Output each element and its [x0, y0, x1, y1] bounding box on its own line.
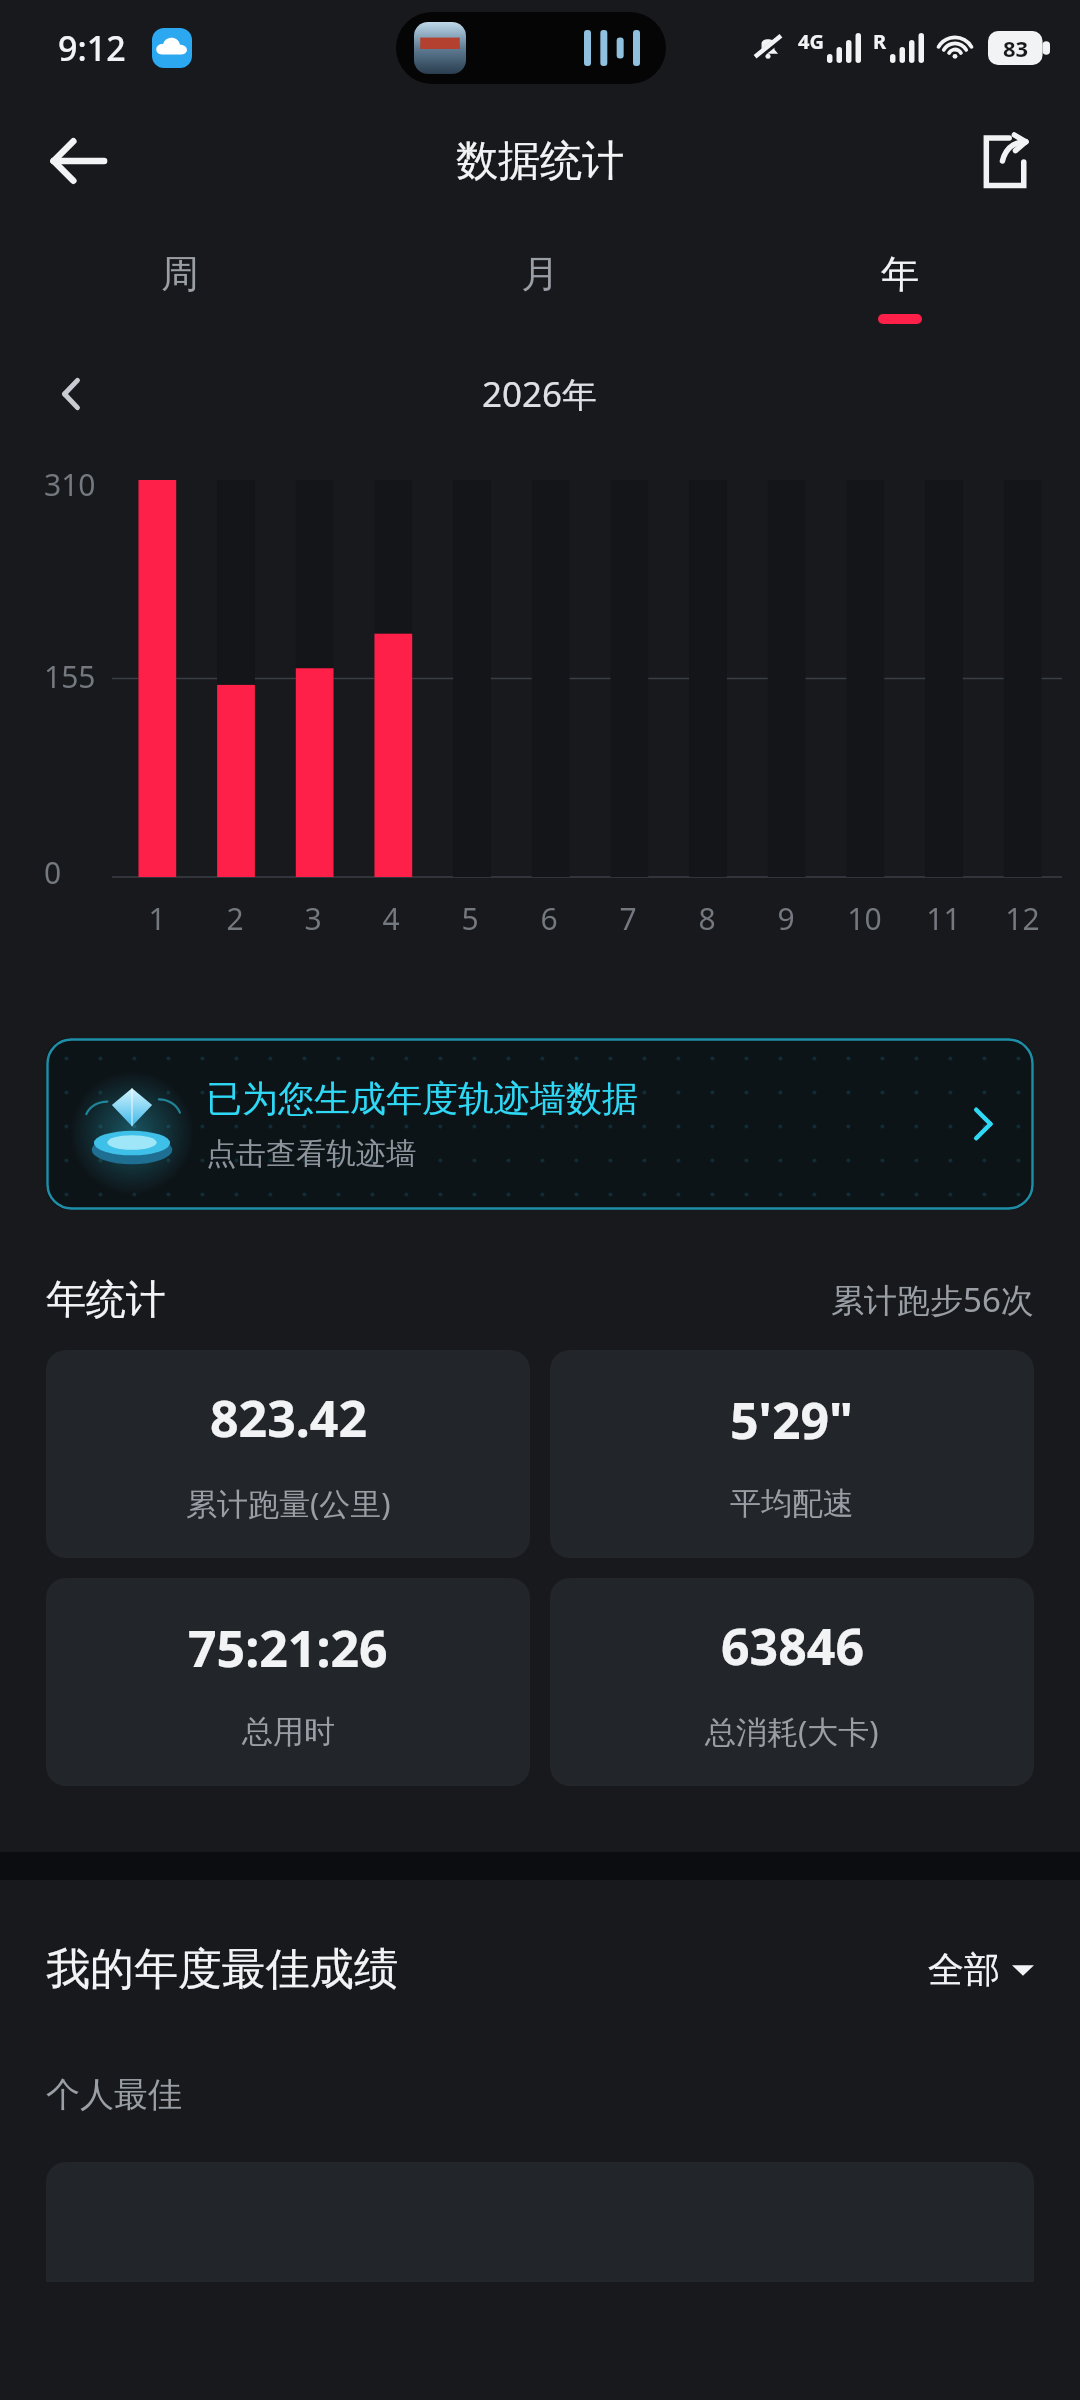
staticText: 2	[226, 898, 244, 939]
staticText: 3	[304, 898, 322, 939]
button[interactable]: 823.42	[46, 1350, 530, 1558]
staticText: 12	[1005, 898, 1040, 939]
button[interactable]: Back	[30, 113, 126, 209]
button[interactable]: 全部	[928, 1947, 1034, 1992]
staticText: 点击查看轨迹墙	[206, 1135, 416, 1173]
staticText: 0	[44, 852, 62, 893]
staticText: 5'29"	[730, 1386, 854, 1454]
staticText: 全部	[928, 1947, 1000, 1992]
button[interactable]: 75:21:26	[46, 1578, 530, 1786]
staticText: 周	[161, 250, 199, 298]
button[interactable]: 5'29"	[550, 1350, 1034, 1558]
staticText: 6	[540, 898, 558, 939]
button[interactable]: 周	[0, 226, 360, 348]
staticText: 155	[44, 656, 96, 697]
staticText: 83	[1003, 33, 1029, 63]
staticText: 2026年	[482, 370, 598, 418]
button[interactable]: 月	[360, 226, 720, 348]
staticText: 数据统计	[456, 135, 624, 188]
button[interactable]: Share	[958, 115, 1050, 207]
staticText: 4	[382, 898, 400, 939]
staticText: 总消耗(大卡)	[705, 1710, 879, 1752]
staticText: 10	[847, 898, 882, 939]
button[interactable]: Previous year	[36, 358, 108, 430]
staticText: 11	[926, 898, 961, 939]
button[interactable]: 63846	[550, 1578, 1034, 1786]
staticText: 累计跑步56次	[831, 1277, 1034, 1322]
staticText: 63846	[721, 1612, 864, 1680]
staticText: 1	[148, 898, 166, 939]
staticText: 823.42	[210, 1384, 368, 1452]
staticText: 9	[777, 898, 795, 939]
staticText: 年统计	[46, 1274, 166, 1324]
staticText: 个人最佳	[46, 2073, 182, 2116]
staticText: 总用时	[242, 1712, 335, 1751]
button[interactable]: 年	[720, 226, 1080, 348]
staticText: 5	[461, 898, 479, 939]
staticText: 平均配速	[730, 1484, 854, 1523]
staticText: 年	[881, 250, 919, 298]
staticText: 月	[521, 250, 559, 298]
staticText: 已为您生成年度轨迹墙数据	[206, 1076, 638, 1121]
staticText: 7	[619, 898, 637, 939]
staticText: 4G	[798, 28, 824, 55]
staticText: 75:21:26	[188, 1614, 388, 1682]
staticText: 我的年度最佳成绩	[46, 1942, 398, 1997]
staticText: 9:12	[58, 25, 126, 71]
staticText: 310	[44, 464, 96, 505]
button[interactable]: 已为您生成年度轨迹墙数据	[46, 1038, 1034, 1210]
staticText: R	[873, 28, 887, 55]
staticText: 8	[698, 898, 716, 939]
staticText: 累计跑量(公里)	[186, 1482, 391, 1524]
